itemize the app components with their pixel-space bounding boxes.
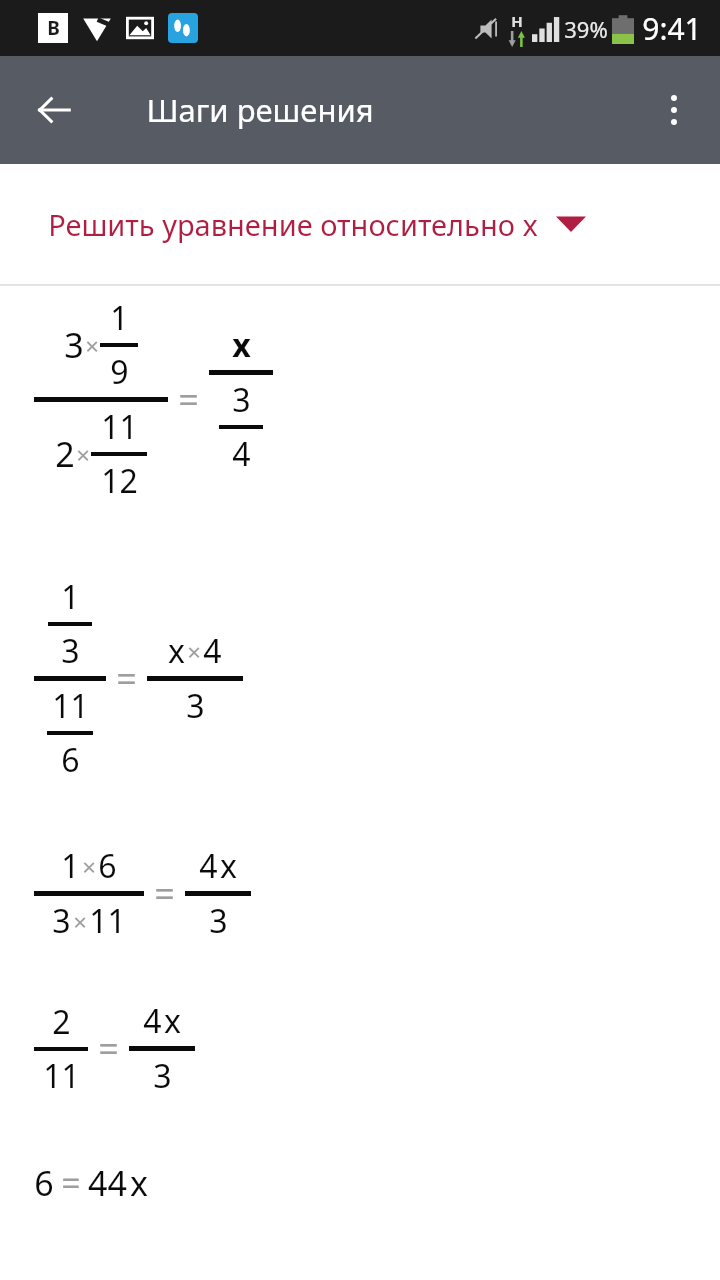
staticText: 1 bbox=[110, 296, 129, 340]
button[interactable]: Back bbox=[22, 78, 86, 142]
staticText: 4 bbox=[199, 844, 218, 888]
staticText: = bbox=[154, 869, 175, 918]
staticText: × bbox=[82, 850, 96, 883]
staticText: 2 bbox=[55, 431, 75, 477]
staticText: 3 bbox=[232, 378, 251, 422]
staticText: = bbox=[98, 1024, 119, 1073]
staticText: 4 bbox=[232, 432, 251, 476]
staticText: 3 bbox=[52, 899, 71, 943]
staticText: 4 bbox=[203, 629, 222, 673]
staticText: 2 bbox=[52, 1000, 71, 1044]
staticText: = bbox=[116, 654, 137, 703]
staticText: × bbox=[187, 635, 201, 668]
button[interactable]: More options bbox=[642, 78, 706, 142]
staticText: 11 bbox=[52, 684, 89, 728]
staticText: × bbox=[73, 905, 87, 938]
staticText: 11 bbox=[43, 1054, 80, 1098]
staticText: 6 bbox=[34, 1160, 54, 1206]
staticText: B bbox=[47, 15, 60, 41]
staticText: = bbox=[178, 375, 199, 424]
staticText: 3 bbox=[64, 322, 84, 368]
staticText: 39% bbox=[564, 14, 608, 44]
staticText: × bbox=[85, 329, 99, 362]
staticText: Решить уравнение относительно x bbox=[48, 205, 538, 244]
staticText: 9:41 bbox=[642, 8, 702, 49]
staticText: 6 bbox=[98, 844, 117, 888]
staticText: 11 bbox=[89, 899, 126, 943]
staticText: 1 bbox=[61, 844, 80, 888]
staticText: 6 bbox=[61, 738, 80, 782]
staticText: 9 bbox=[110, 350, 129, 394]
staticText: 3 bbox=[209, 899, 228, 943]
staticText: x bbox=[164, 999, 181, 1043]
staticText: 3 bbox=[186, 684, 205, 728]
staticText: 11 bbox=[101, 405, 138, 449]
staticText: × bbox=[76, 438, 90, 471]
staticText: 44 bbox=[88, 1160, 127, 1206]
staticText: 4 bbox=[143, 999, 162, 1043]
button[interactable]: Решить уравнение относительно x bbox=[0, 164, 720, 284]
staticText: 3 bbox=[61, 629, 80, 673]
staticText: 12 bbox=[101, 459, 138, 503]
staticText: H bbox=[511, 11, 523, 31]
staticText: Шаги решения bbox=[146, 89, 374, 131]
staticText: x bbox=[220, 844, 237, 888]
staticText: 3 bbox=[153, 1054, 172, 1098]
staticText: 1 bbox=[61, 575, 80, 619]
staticText: = bbox=[61, 1160, 81, 1206]
staticText: x bbox=[130, 1160, 148, 1206]
staticText: x bbox=[232, 323, 251, 367]
staticText: x bbox=[168, 629, 185, 673]
